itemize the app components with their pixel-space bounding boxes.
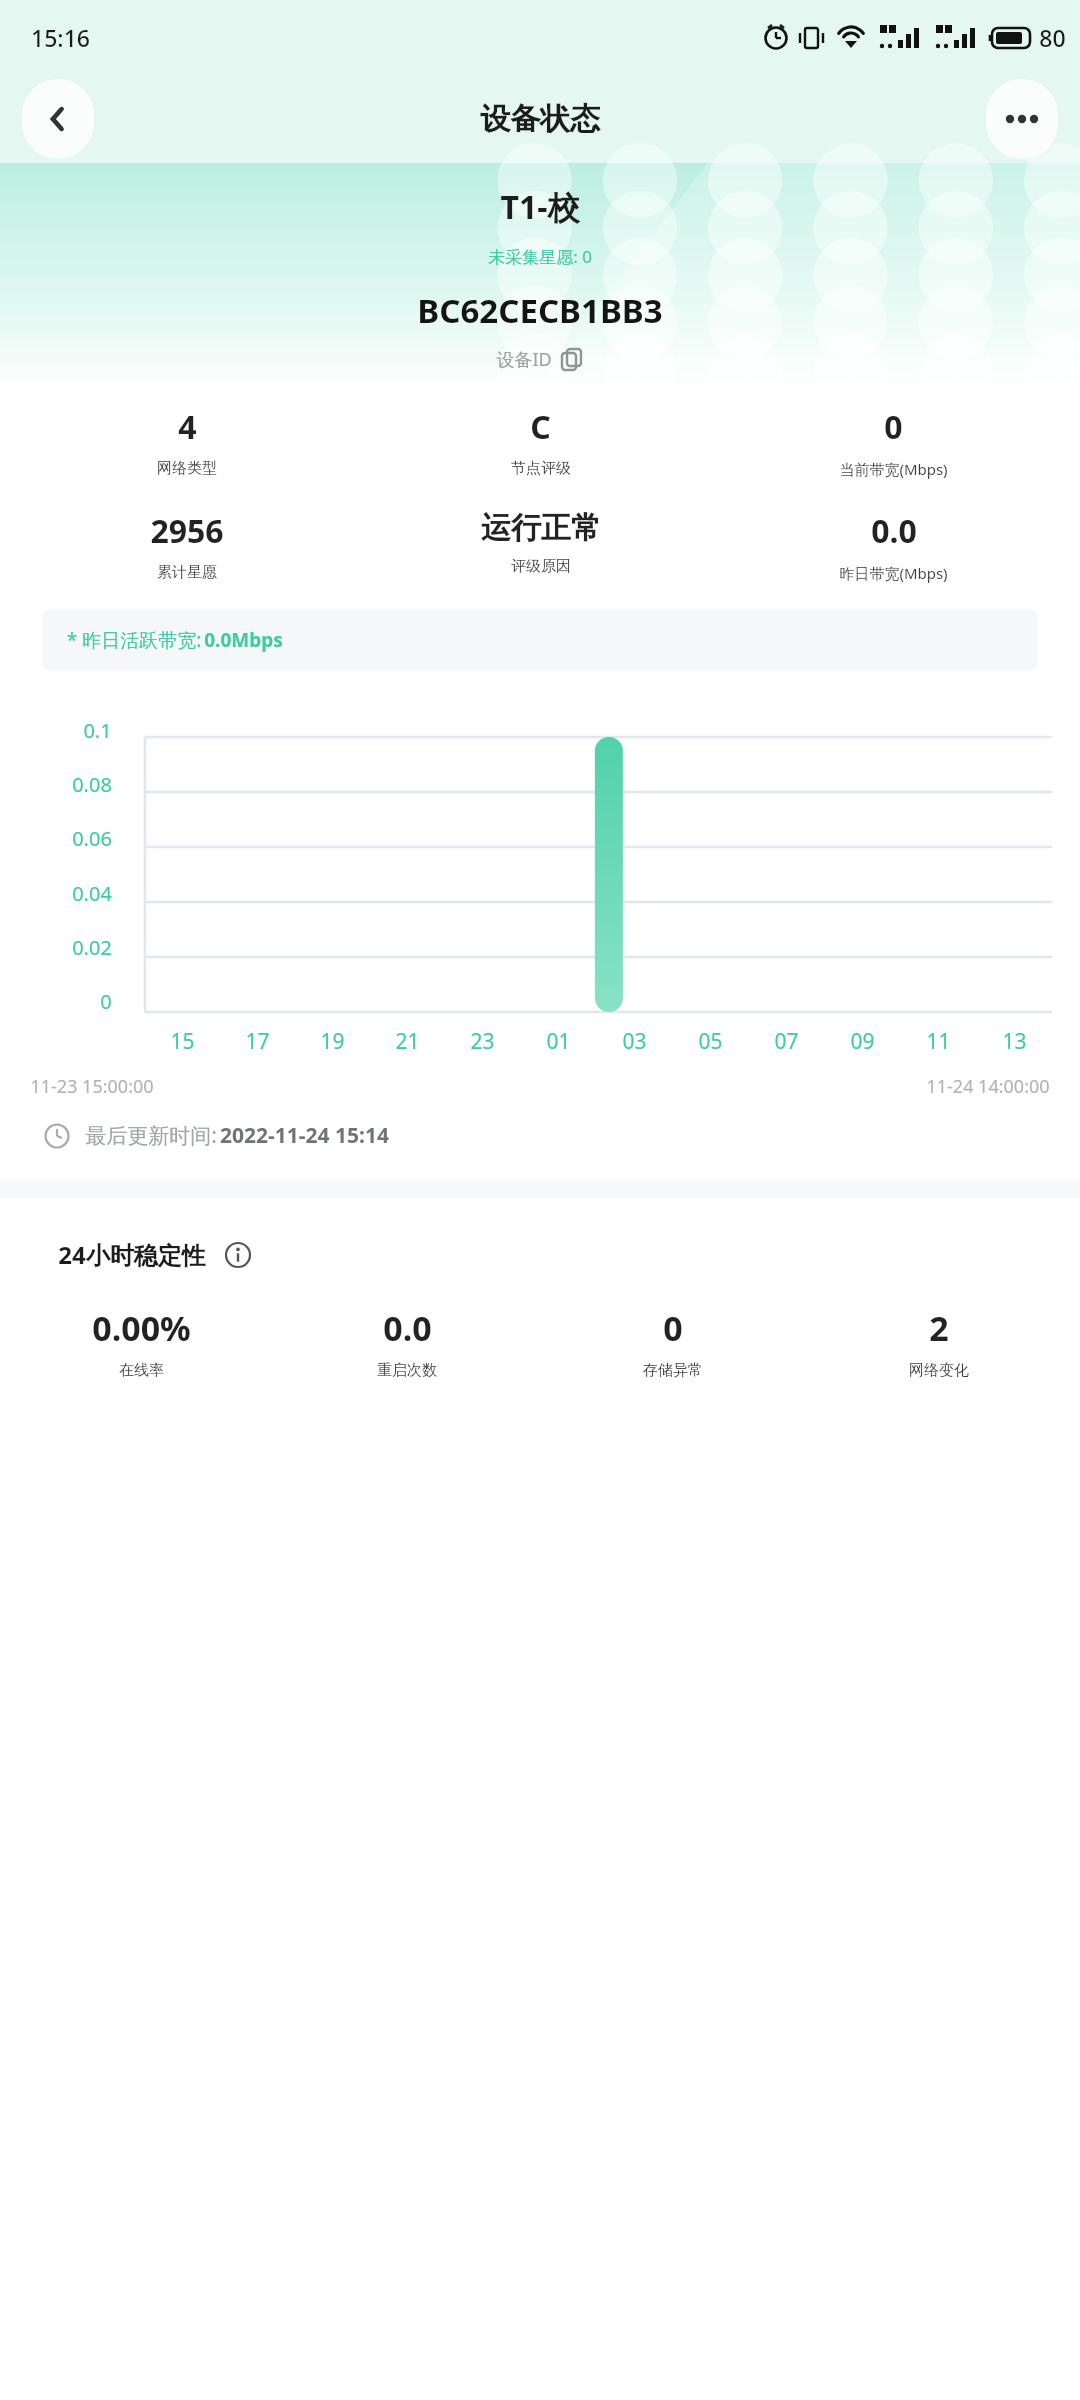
staticText: 05 xyxy=(698,1027,723,1056)
staticText: 11-23 15:00:00 xyxy=(30,1074,154,1099)
staticText: 19 xyxy=(320,1027,345,1056)
staticText: 0.00% xyxy=(92,1305,191,1351)
staticText: 网络变化 xyxy=(909,1361,969,1380)
button[interactable]: More options xyxy=(986,79,1058,159)
staticText: 设备状态 xyxy=(480,100,600,138)
staticText: 0.06 xyxy=(72,825,112,852)
button[interactable]: Info xyxy=(224,1241,252,1269)
staticText: 节点评级 xyxy=(511,459,571,478)
staticText: 11 xyxy=(926,1027,951,1056)
staticText: 4 xyxy=(178,405,197,449)
staticText: 80 xyxy=(1039,22,1066,53)
staticText: 在线率 xyxy=(119,1361,164,1380)
staticText: 21 xyxy=(395,1027,420,1056)
staticText: 0.1 xyxy=(83,717,112,744)
staticText: 评级原因 xyxy=(511,557,571,576)
staticText: 网络类型 xyxy=(157,459,217,478)
staticText: 0.0 xyxy=(871,509,917,553)
staticText: 09 xyxy=(850,1027,875,1056)
staticText: 最后更新时间: xyxy=(82,1121,220,1150)
staticText: 0.0 xyxy=(383,1305,432,1351)
staticText: 0.0Mbps xyxy=(204,627,283,653)
staticText: 0 xyxy=(884,405,903,449)
staticText: 13 xyxy=(1002,1027,1027,1056)
staticText: 运行正常 xyxy=(481,509,601,547)
staticText: 累计星愿 xyxy=(157,563,217,582)
staticText: 01 xyxy=(546,1027,571,1056)
staticText: 昨日带宽(Mbps) xyxy=(839,563,948,583)
staticText: 03 xyxy=(622,1027,647,1056)
staticText: 0 xyxy=(100,988,112,1015)
button[interactable]: 设备ID xyxy=(490,347,590,372)
staticText: T1-校 xyxy=(500,185,580,229)
staticText: C xyxy=(530,405,551,449)
staticText: 2 xyxy=(929,1305,949,1351)
staticText: * 昨日活跃带宽: xyxy=(64,627,204,653)
staticText: 2956 xyxy=(150,509,224,553)
staticText: 11-24 14:00:00 xyxy=(926,1074,1050,1099)
staticText: 0.02 xyxy=(72,934,112,961)
staticText: 0.08 xyxy=(72,771,112,798)
staticText: BC62CECB1BB3 xyxy=(417,288,663,333)
staticText: 当前带宽(Mbps) xyxy=(839,459,948,479)
staticText: 未采集星愿: 0 xyxy=(488,245,592,268)
button[interactable]: Back xyxy=(22,79,94,159)
staticText: 重启次数 xyxy=(377,1361,437,1380)
staticText: 15 xyxy=(170,1027,195,1056)
staticText: 07 xyxy=(774,1027,799,1056)
staticText: 23 xyxy=(470,1027,495,1056)
staticText: 设备ID xyxy=(496,347,552,372)
staticText: 2022-11-24 15:14 xyxy=(220,1121,389,1150)
staticText: 17 xyxy=(245,1027,270,1056)
staticText: 0 xyxy=(663,1305,683,1351)
staticText: 存储异常 xyxy=(643,1361,703,1380)
staticText: 15:16 xyxy=(31,22,90,53)
staticText: 0.04 xyxy=(72,880,112,907)
staticText: 24小时稳定性 xyxy=(58,1238,206,1271)
